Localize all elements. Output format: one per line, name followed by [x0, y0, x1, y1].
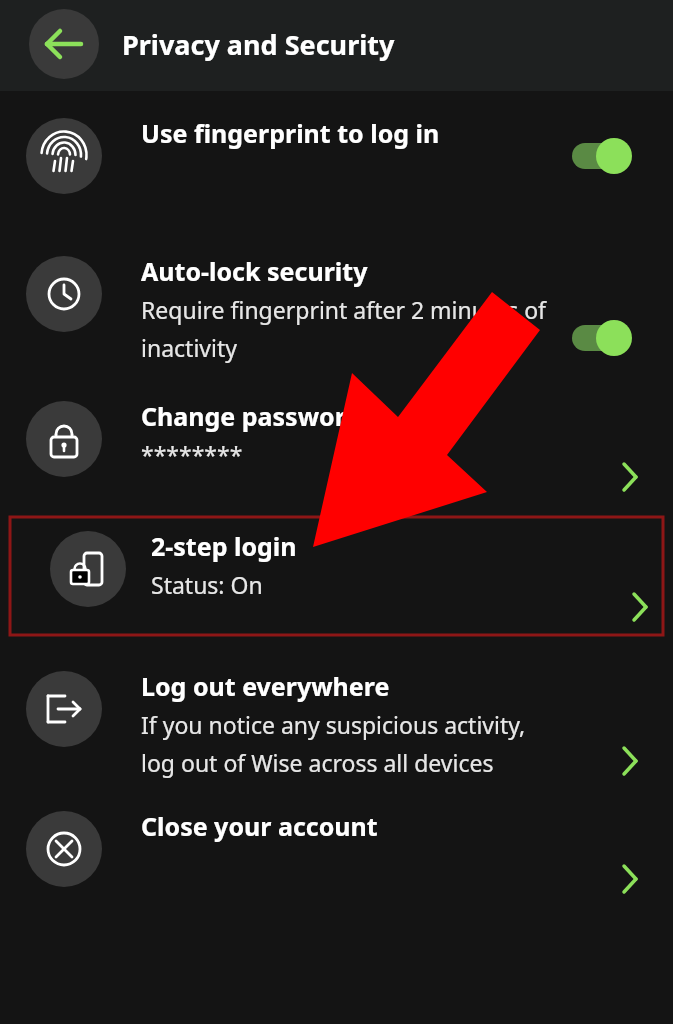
button[interactable]: Auto lock [0, 220, 673, 377]
staticText: Auto-lock security [141, 254, 368, 288]
other: Open [608, 739, 652, 783]
staticText: Change password [141, 399, 362, 433]
other: Open [608, 857, 652, 901]
other: Fingerprint [26, 118, 102, 194]
other: Password [26, 401, 102, 477]
staticText: ******** [141, 439, 243, 470]
staticText: 2-step login [151, 529, 297, 563]
other: Log out everywhere [26, 671, 102, 747]
button[interactable]: Toggle [568, 316, 640, 360]
other: Open [618, 585, 662, 629]
button[interactable]: 2-step login [10, 517, 663, 635]
other: Auto lock [26, 256, 102, 332]
button[interactable]: Close your account [0, 799, 673, 919]
other: Open [608, 455, 652, 499]
staticText: Require fingerprint after 2 minutes of i… [141, 294, 551, 364]
button[interactable]: Fingerprint [0, 92, 673, 220]
staticText: Status: On [151, 569, 263, 600]
button[interactable]: Password [0, 377, 673, 517]
other: Close your account [26, 811, 102, 887]
button[interactable]: Log out everywhere [0, 639, 673, 799]
staticText: Log out everywhere [141, 669, 390, 703]
staticText: If you notice any suspicious activity, l… [141, 709, 551, 779]
button[interactable]: Toggle [568, 134, 640, 178]
staticText: Close your account [141, 809, 378, 843]
button[interactable]: Back [29, 9, 99, 79]
staticText: Use fingerprint to log in [141, 116, 440, 150]
other: 2-step login [50, 531, 126, 607]
staticText: Privacy and Security [122, 26, 395, 63]
